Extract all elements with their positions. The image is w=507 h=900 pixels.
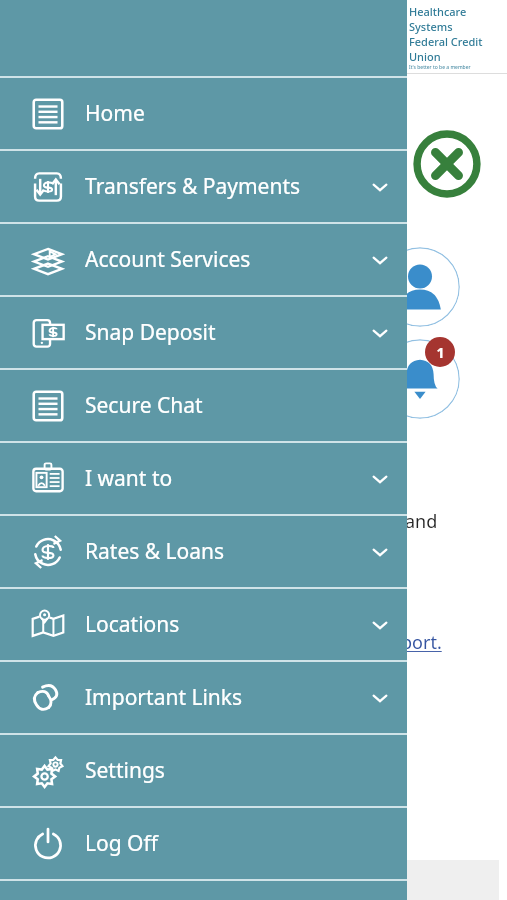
button[interactable]: Secure Chat — [0, 370, 407, 441]
button[interactable]: Close — [407, 112, 497, 225]
staticText: Account Services — [85, 245, 251, 274]
staticText: Rates & Loans — [85, 537, 225, 566]
staticText: Healthcare Systems — [409, 4, 507, 34]
staticText: Secure Chat — [85, 391, 203, 420]
button[interactable]: Locations — [0, 589, 407, 660]
button[interactable]: Rates & Loans — [0, 516, 407, 587]
staticText: It's better to be a member — [409, 64, 471, 71]
staticText: Important Links — [85, 683, 243, 712]
button[interactable]: Notifications — [380, 339, 460, 419]
button[interactable]: Profile — [380, 247, 460, 327]
button[interactable]: Account Services — [0, 224, 407, 295]
button[interactable]: I want to — [0, 443, 407, 514]
staticText: Transfers & Payments — [85, 172, 301, 201]
button[interactable]: Snap Deposit — [0, 297, 407, 368]
staticText: and — [405, 509, 438, 534]
staticText: 1 — [436, 343, 445, 362]
staticText: Settings — [85, 756, 165, 785]
button[interactable]: Settings — [0, 735, 407, 806]
staticText: Home — [85, 99, 145, 128]
staticText: Log Off — [85, 829, 158, 858]
button[interactable]: Log Off — [0, 808, 407, 879]
button[interactable]: Transfers & Payments — [0, 151, 407, 222]
button[interactable]: Important Links — [0, 662, 407, 733]
button[interactable]: port. — [401, 630, 442, 655]
staticText: Snap Deposit — [85, 318, 216, 347]
staticText: I want to — [85, 464, 173, 493]
staticText: Federal Credit Union — [409, 34, 507, 64]
staticText: Locations — [85, 610, 180, 639]
button[interactable]: Home — [0, 78, 407, 149]
